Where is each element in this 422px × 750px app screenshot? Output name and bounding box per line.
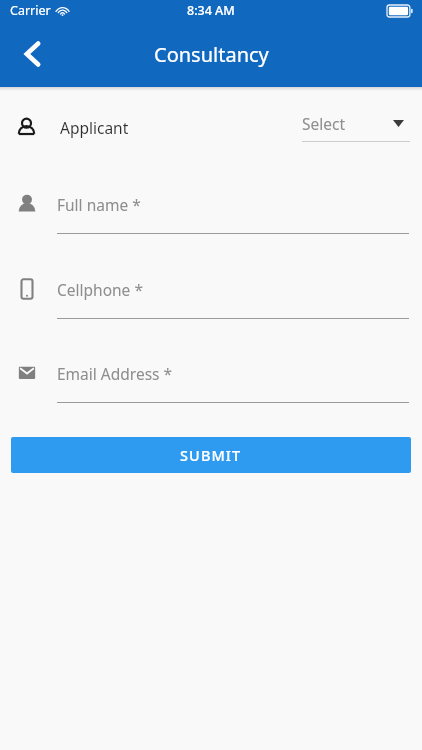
button[interactable]: Applicant [0,96,422,158]
button[interactable]: Email Address * [0,359,422,411]
button[interactable]: Back [8,30,56,78]
staticText: Consultancy [154,41,269,68]
staticText: 8:34 AM [187,2,235,19]
staticText: Applicant [60,117,129,138]
staticText: Carrier [10,2,51,19]
staticText: Full name * [57,194,141,215]
staticText: Email Address * [57,363,173,384]
button[interactable]: SUBMIT [11,437,411,473]
button[interactable]: Full name * [0,190,422,242]
staticText: SUBMIT [180,445,242,465]
staticText: Select [302,113,346,134]
button[interactable]: Cellphone * [0,275,422,327]
staticText: Cellphone * [57,279,143,300]
